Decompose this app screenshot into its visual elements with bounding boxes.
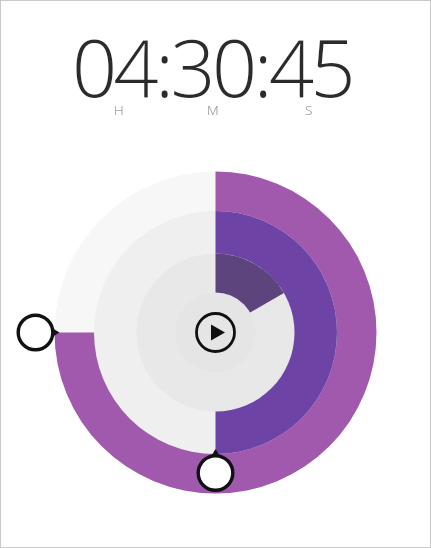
staticText: 04:30:45 <box>72 13 353 121</box>
staticText: S <box>305 101 313 119</box>
staticText: H <box>114 101 124 119</box>
button[interactable] <box>188 445 243 500</box>
button[interactable] <box>187 304 244 361</box>
button[interactable] <box>8 305 63 360</box>
staticText: M <box>207 101 219 119</box>
